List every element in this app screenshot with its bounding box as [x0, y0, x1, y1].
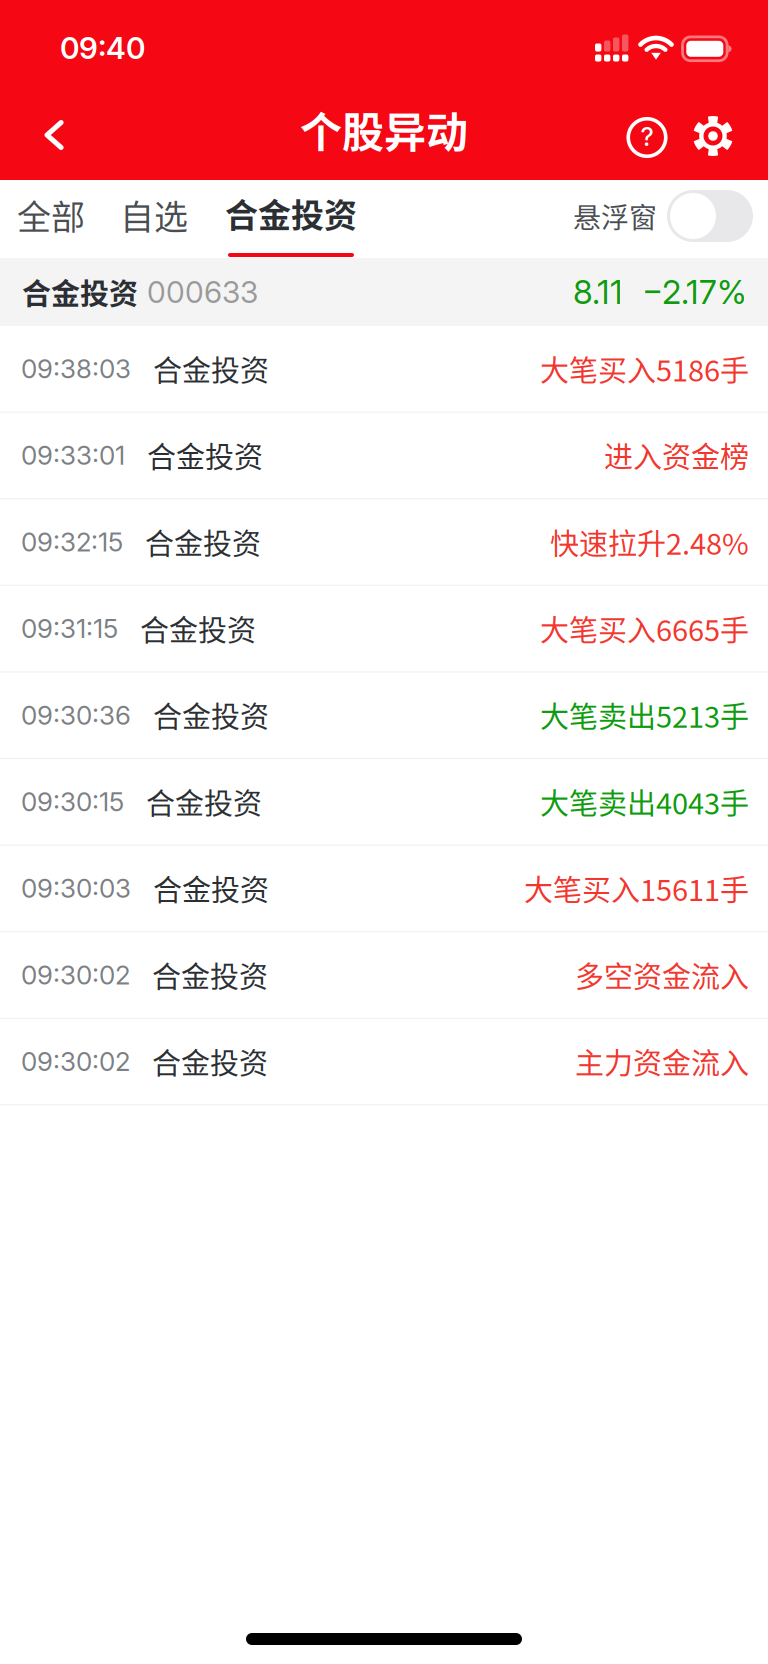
button[interactable]: 09:30:15 [0, 759, 768, 846]
staticText: 合金投资 [146, 781, 262, 823]
staticText: 合金投资 [152, 954, 268, 996]
staticText: 合金投资 [22, 271, 138, 313]
staticText: 悬浮窗 [573, 196, 657, 236]
button[interactable]: 自选 [120, 180, 188, 258]
staticText: 自选 [120, 190, 188, 240]
staticText: −2.17% [642, 272, 747, 312]
button[interactable]: 合金投资 [225, 180, 357, 258]
staticText: 进入资金榜 [604, 434, 749, 476]
staticText: 09:30:15 [21, 786, 124, 818]
button[interactable]: 设置 [0, 96, 745, 168]
staticText: 合金投资 [225, 189, 357, 237]
staticText: 大笔买入15611手 [524, 867, 749, 909]
staticText: 合金投资 [153, 348, 269, 390]
staticText: 大笔买入5186手 [540, 348, 749, 390]
staticText: 多空资金流入 [575, 954, 749, 996]
staticText: 主力资金流入 [575, 1041, 749, 1083]
staticText: 09:31:15 [21, 613, 118, 644]
staticText: 合金投资 [152, 1041, 268, 1083]
staticText: 合金投资 [153, 694, 269, 736]
button[interactable]: 09:38:03 [0, 326, 768, 413]
button[interactable]: 09:31:15 [0, 586, 768, 672]
button[interactable]: 全部 [17, 180, 85, 258]
staticText: 8.11 [573, 272, 623, 312]
staticText: 000633 [147, 274, 258, 310]
staticText: 09:30:02 [21, 1046, 130, 1077]
staticText: 合金投资 [153, 867, 269, 909]
button[interactable]: 返回 [0, 96, 86, 167]
button[interactable]: 悬浮窗 [657, 193, 768, 245]
staticText: 09:33:01 [21, 440, 125, 471]
staticText: 大笔卖出4043手 [540, 781, 749, 823]
staticText: 合金投资 [147, 434, 263, 476]
staticText: 09:30:36 [21, 699, 131, 731]
button[interactable]: 09:32:15 [0, 499, 768, 586]
staticText: 09:40 [60, 30, 145, 66]
staticText: 大笔买入6665手 [540, 608, 749, 650]
button[interactable]: 09:33:01 [0, 413, 768, 499]
staticText: 09:30:03 [21, 873, 131, 904]
staticText: 快速拉升2.48% [550, 521, 749, 563]
button[interactable]: 帮助 [0, 96, 679, 169]
button[interactable]: 09:30:36 [0, 672, 768, 759]
button[interactable]: 09:30:02 [0, 1019, 768, 1105]
staticText: 个股异动 [300, 99, 468, 160]
staticText: 09:30:02 [21, 959, 130, 991]
staticText: ? [640, 122, 653, 152]
staticText: 09:38:03 [21, 353, 131, 385]
staticText: 合金投资 [140, 608, 256, 650]
staticText: 全部 [17, 190, 85, 240]
button[interactable]: 09:30:03 [0, 846, 768, 932]
staticText: 09:32:15 [21, 526, 123, 558]
button[interactable]: 09:30:02 [0, 932, 768, 1019]
staticText: 合金投资 [145, 521, 261, 563]
staticText: 大笔卖出5213手 [540, 694, 749, 736]
